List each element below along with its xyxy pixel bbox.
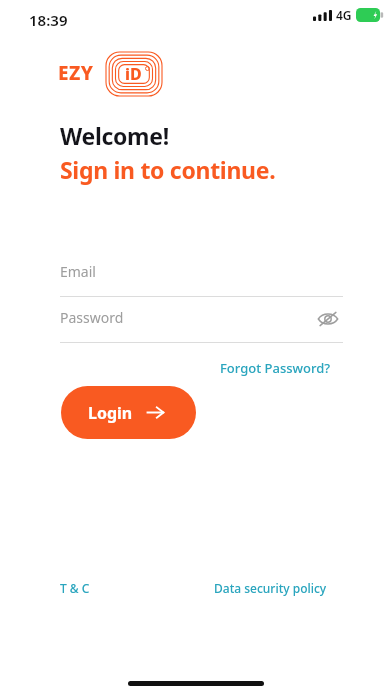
staticText: Forgot Password? [220, 359, 331, 377]
staticText: 18:39 [29, 10, 68, 30]
staticText: Data security policy [214, 580, 327, 596]
button[interactable]: Forgot Password? [218, 357, 333, 379]
staticText: EZY [58, 60, 94, 86]
button[interactable]: Email [60, 262, 343, 297]
button[interactable]: Password [60, 308, 343, 343]
staticText: 4G [336, 7, 352, 23]
staticText: Welcome! [60, 120, 169, 151]
staticText: Sign in to continue. [60, 154, 276, 185]
staticText: Password [60, 308, 124, 327]
staticText: Login [88, 402, 133, 424]
staticText: Email [60, 262, 96, 281]
staticText: iD [125, 63, 142, 85]
button[interactable]: T & C [56, 577, 94, 599]
button[interactable]: Data security policy [210, 577, 331, 599]
button[interactable]: Login [61, 386, 196, 439]
staticText: T & C [60, 580, 90, 596]
button[interactable]: Show password [313, 304, 343, 334]
